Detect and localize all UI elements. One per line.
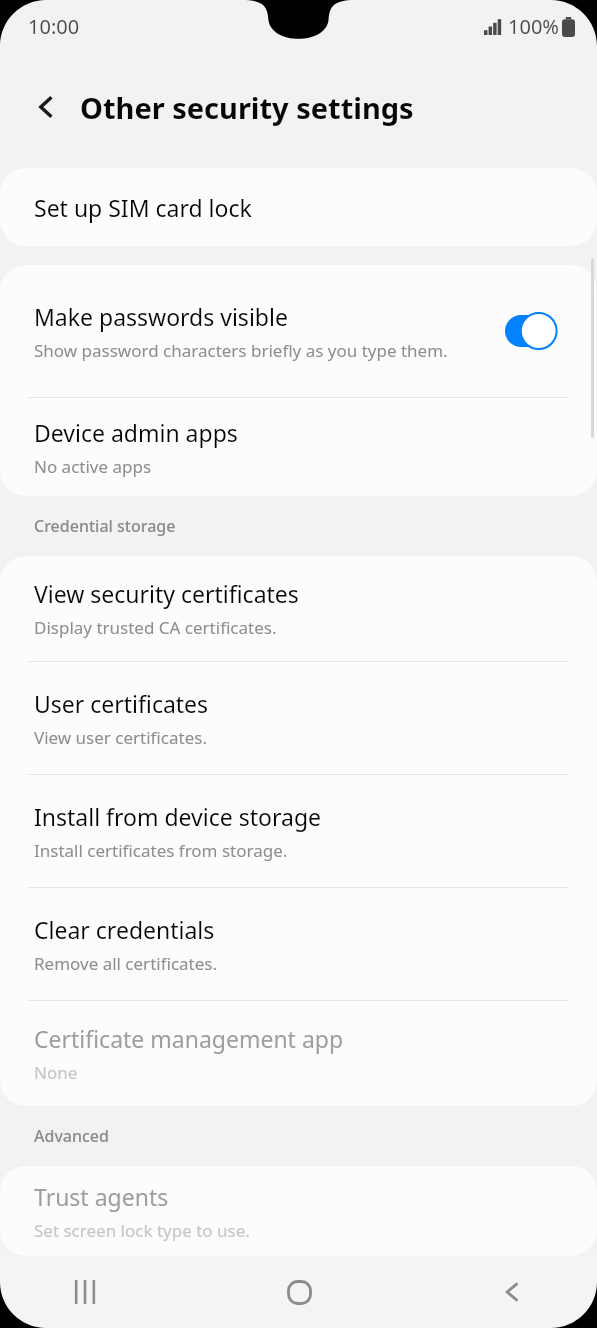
staticText: User certificates bbox=[34, 688, 209, 719]
staticText: Show password characters briefly as you … bbox=[34, 339, 448, 362]
staticText: Trust agents bbox=[34, 1181, 169, 1212]
staticText: Advanced bbox=[34, 1125, 109, 1147]
staticText: Certificate management app bbox=[34, 1023, 344, 1054]
staticText: No active apps bbox=[34, 455, 152, 478]
staticText: Install from device storage bbox=[34, 801, 321, 832]
staticText: Clear credentials bbox=[34, 914, 215, 945]
staticText: Install certificates from storage. bbox=[34, 839, 288, 862]
button[interactable]: Back bbox=[467, 1262, 557, 1322]
staticText: Credential storage bbox=[34, 515, 176, 537]
button[interactable]: View security certificates bbox=[0, 556, 597, 661]
button[interactable]: Device admin apps bbox=[0, 398, 597, 496]
staticText: View security certificates bbox=[34, 578, 299, 609]
staticText: Set up SIM card lock bbox=[34, 192, 252, 223]
button[interactable]: Make passwords visible toggle bbox=[505, 311, 561, 351]
staticText: Other security settings bbox=[80, 88, 414, 127]
button[interactable]: Back bbox=[22, 83, 70, 131]
button[interactable]: User certificates bbox=[0, 662, 597, 774]
button[interactable]: Make passwords visible bbox=[0, 265, 597, 397]
staticText: Display trusted CA certificates. bbox=[34, 616, 277, 639]
button[interactable]: Certificate management app bbox=[0, 1001, 597, 1106]
staticText: Device admin apps bbox=[34, 417, 238, 448]
button[interactable]: Recents bbox=[40, 1262, 130, 1322]
button[interactable]: Home bbox=[254, 1262, 344, 1322]
button[interactable]: Trust agents bbox=[0, 1166, 597, 1256]
staticText: Remove all certificates. bbox=[34, 952, 218, 975]
staticText: Make passwords visible bbox=[34, 301, 288, 332]
staticText: Set screen lock type to use. bbox=[34, 1219, 250, 1242]
staticText: None bbox=[34, 1061, 78, 1084]
button[interactable]: Set up SIM card lock bbox=[0, 168, 597, 246]
staticText: View user certificates. bbox=[34, 726, 207, 749]
staticText: 100% bbox=[508, 13, 559, 40]
button[interactable]: Clear credentials bbox=[0, 888, 597, 1000]
staticText: 10:00 bbox=[28, 13, 80, 40]
button[interactable]: Install from device storage bbox=[0, 775, 597, 887]
